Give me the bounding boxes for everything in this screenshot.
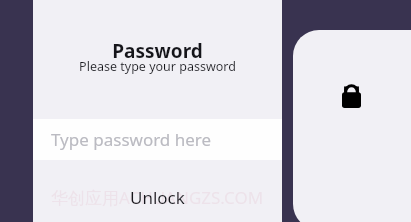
staticText: Please type your password: [79, 58, 236, 75]
button[interactable]: Type password here: [33, 119, 282, 160]
other: Locked: [342, 81, 361, 108]
staticText: 华创应用ACHUANGZS.COM: [51, 186, 264, 209]
button[interactable]: Unlock: [33, 172, 282, 222]
staticText: Type password here: [51, 128, 212, 151]
staticText: Password: [112, 38, 203, 64]
staticText: Unlock: [130, 186, 185, 209]
